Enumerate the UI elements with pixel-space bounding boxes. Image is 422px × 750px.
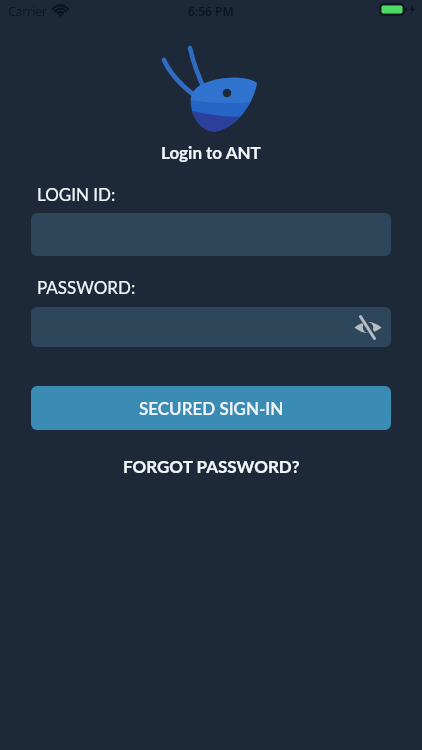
staticText: Carrier bbox=[8, 3, 48, 19]
button[interactable]: SECURED SIGN-IN bbox=[31, 386, 391, 430]
button[interactable] bbox=[354, 313, 382, 341]
staticText: Login to ANT bbox=[161, 142, 261, 162]
staticText: SECURED SIGN-IN bbox=[139, 398, 284, 418]
staticText: 6:56 PM bbox=[188, 3, 234, 19]
staticText: LOGIN ID: bbox=[37, 184, 116, 204]
button[interactable]: FORGOT PASSWORD? bbox=[123, 456, 300, 476]
button[interactable] bbox=[31, 307, 391, 347]
staticText: PASSWORD: bbox=[37, 277, 136, 297]
